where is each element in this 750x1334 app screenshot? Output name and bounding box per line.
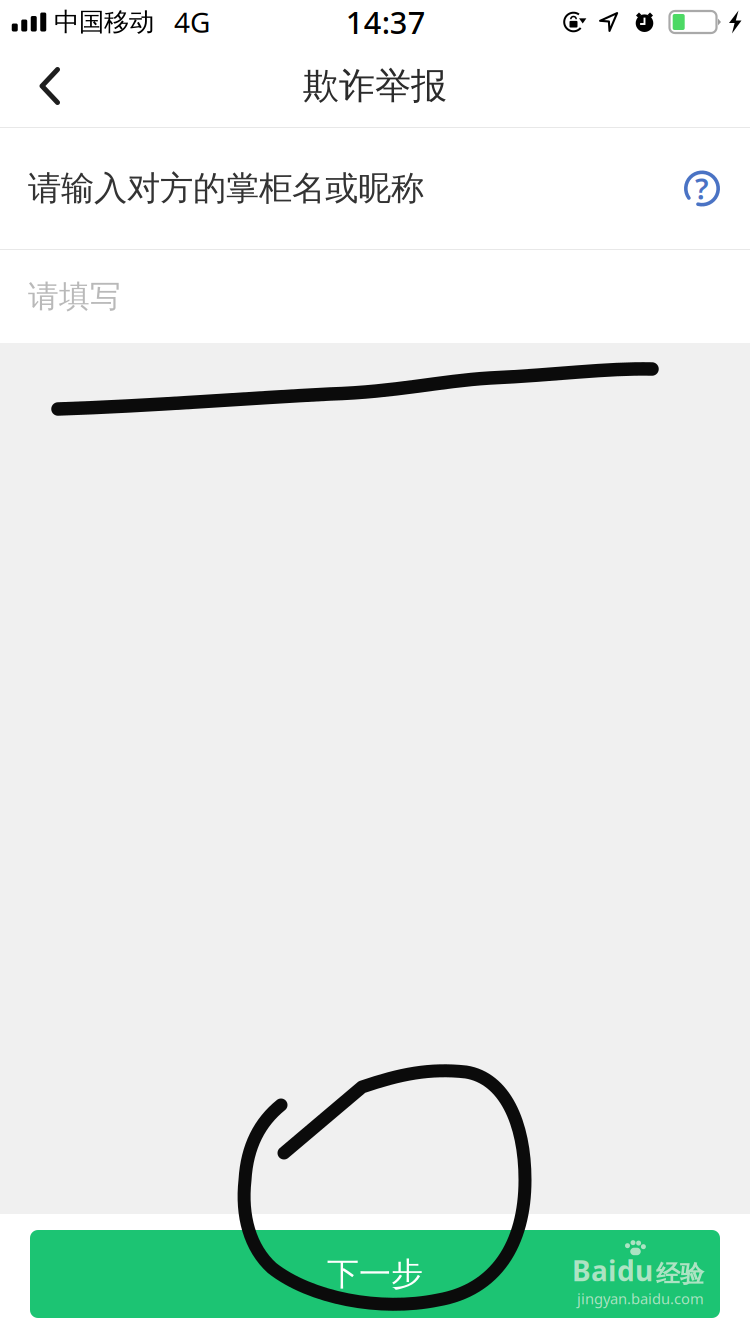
button[interactable]: 帮助 — [670, 156, 734, 220]
staticText: du — [617, 1252, 653, 1289]
staticText: 中国移动 — [54, 6, 154, 37]
staticText: 请输入对方的掌柜名或昵称 — [28, 168, 424, 209]
button[interactable]: 返回 — [0, 44, 100, 128]
staticText: 欺诈举报 — [303, 64, 447, 108]
staticText: 下一步 — [327, 1254, 423, 1294]
staticText: 经验 — [656, 1259, 704, 1289]
staticText: Bai — [572, 1252, 616, 1289]
button[interactable]: 请填写 — [0, 250, 750, 343]
staticText: 14:37 — [346, 2, 426, 42]
staticText: 4G — [174, 3, 210, 41]
staticText: jingyan.baidu.com — [577, 1289, 704, 1308]
button[interactable]: 下一步 — [30, 1230, 720, 1318]
staticText: 请填写 — [28, 278, 121, 315]
staticText: ? — [695, 168, 709, 207]
